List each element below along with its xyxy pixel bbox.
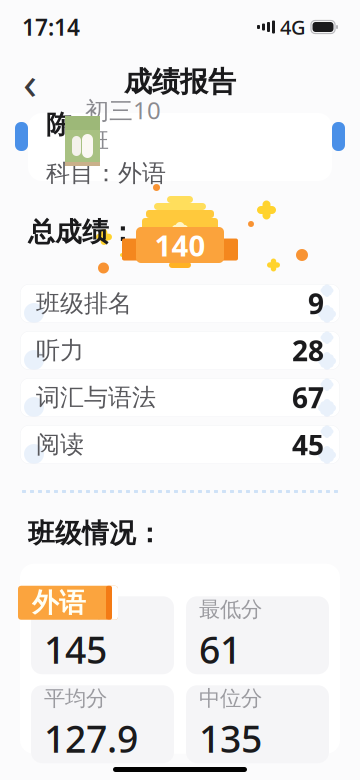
staticText: 词汇与语法 xyxy=(36,383,156,412)
staticText: 成绩报告 xyxy=(124,65,236,99)
staticText: ‹ xyxy=(23,52,37,112)
staticText: 最高分 xyxy=(44,596,107,623)
staticText xyxy=(71,108,85,141)
staticText: 最低分 xyxy=(199,596,262,623)
staticText: 中位分 xyxy=(199,685,262,712)
staticText: 外语 xyxy=(32,586,86,619)
staticText: 班级排名 xyxy=(36,289,132,318)
button[interactable]: 班级排名 xyxy=(20,284,340,323)
button[interactable]: 听力 xyxy=(20,331,340,370)
staticText: 67 xyxy=(292,379,324,416)
button[interactable]: 阅读 xyxy=(20,425,340,464)
staticText: 61 xyxy=(199,625,241,674)
staticText: 听力 xyxy=(36,336,84,365)
staticText: 4G xyxy=(280,14,306,40)
staticText: 17:14 xyxy=(22,12,80,42)
staticText: 科目：外语 xyxy=(46,158,166,188)
staticText: 45 xyxy=(292,426,324,463)
button[interactable]: 词汇与语法 xyxy=(20,378,340,417)
button[interactable]: Back xyxy=(8,60,52,104)
staticText: 总成绩： xyxy=(28,216,136,248)
staticText: 28 xyxy=(292,332,324,369)
staticText: 初三10班 xyxy=(85,94,161,155)
staticText: 140 xyxy=(154,225,205,264)
staticText: 平均分 xyxy=(44,685,107,712)
staticText: 陈 xyxy=(46,109,71,140)
staticText: 135 xyxy=(199,714,262,763)
staticText: 9 xyxy=(308,285,324,322)
staticText: 127.9 xyxy=(44,714,138,763)
staticText: 阅读 xyxy=(36,430,84,459)
staticText: 145 xyxy=(44,625,107,674)
staticText: 班级情况： xyxy=(28,517,163,550)
